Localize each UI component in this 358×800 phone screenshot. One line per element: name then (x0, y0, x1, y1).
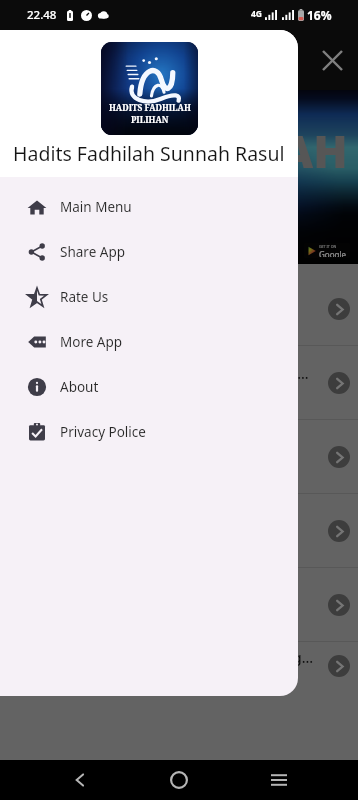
button[interactable]: Keutamaan Sholat Berjamaah (0, 420, 358, 493)
button[interactable]: Adab Dan Keutamaan Orang Membaca Al Qur'… (0, 346, 358, 419)
staticText: Adab Dan Keutamaan Orang Membaca Al Qur'… (16, 364, 318, 383)
button[interactable]: Close (310, 38, 354, 82)
button[interactable]: More App (0, 319, 298, 364)
staticText: Keutamaan Sholat Berjamaah (16, 438, 318, 457)
button[interactable]: Keutamaan Orang Yang Menuntut Ilmu Agam (0, 642, 358, 690)
button[interactable]: GET IT ON (307, 244, 347, 257)
staticText: 16% (307, 7, 332, 23)
button[interactable]: Keutamaan Membaca Al-Qur'an (0, 272, 358, 345)
staticText: FADHILAH (111, 120, 348, 181)
staticText: 4G (251, 8, 263, 20)
button[interactable]: Main Menu (0, 184, 298, 229)
staticText: About (60, 378, 99, 396)
staticText: Keutamaan Puasa Sunnah (16, 586, 318, 605)
staticText: 22.48 (27, 7, 57, 23)
staticText: Keutamaan Bersedekah (16, 512, 318, 531)
button[interactable]: Keutamaan Bersedekah (0, 494, 358, 567)
staticText: Keutamaan Orang Yang Menuntut Ilmu Agam (16, 648, 318, 667)
button[interactable]: Share App (0, 229, 298, 274)
staticText: HADITS FADHILAH (109, 102, 191, 113)
button[interactable]: Keutamaan Puasa Sunnah (0, 568, 358, 641)
staticText: Google Play (319, 249, 347, 257)
staticText: Share App (60, 243, 125, 261)
staticText: Keutamaan Membaca Al-Qur'an (16, 290, 318, 309)
button[interactable]: Back (60, 760, 100, 800)
staticText: Hadits Fadhilah Sunnah Rasul (13, 140, 285, 167)
button[interactable]: Home (159, 760, 199, 800)
staticText: PILIHAN (131, 114, 169, 125)
button[interactable]: Privacy Police (0, 409, 298, 454)
button[interactable]: Recent apps (259, 760, 299, 800)
button[interactable]: About (0, 364, 298, 409)
staticText: Main Menu (60, 198, 132, 216)
staticText: Privacy Police (60, 423, 146, 441)
staticText: GET IT ON (319, 244, 337, 249)
staticText: Rate Us (60, 288, 109, 306)
staticText: More App (60, 333, 123, 351)
button[interactable]: Rate Us (0, 274, 298, 319)
